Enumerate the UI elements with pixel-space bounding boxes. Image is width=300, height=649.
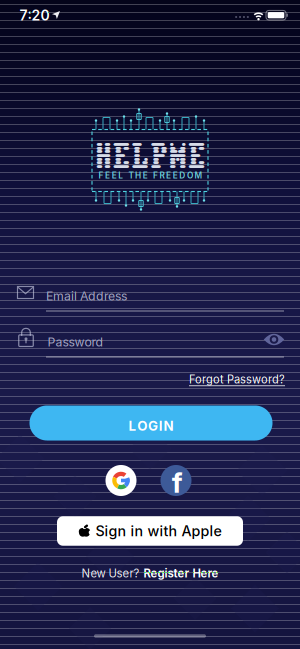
staticText: L xyxy=(129,418,137,434)
staticText: 7:20 xyxy=(19,7,49,24)
staticText: I xyxy=(159,418,163,434)
staticText: N xyxy=(163,418,173,434)
staticText: L xyxy=(118,170,123,180)
button[interactable]: Sign in with Apple xyxy=(57,516,243,546)
button[interactable]: Forgot Password? xyxy=(189,373,285,386)
staticText: E xyxy=(114,141,130,173)
button[interactable]: Show password xyxy=(263,332,284,346)
staticText: D xyxy=(179,170,185,180)
staticText: Forgot Password? xyxy=(189,373,285,386)
staticText: Email Address xyxy=(46,289,127,303)
staticText: L xyxy=(133,141,149,173)
staticText: F xyxy=(153,170,158,180)
staticText: E xyxy=(166,170,171,180)
staticText: O xyxy=(187,170,193,180)
staticText: T xyxy=(128,170,133,180)
staticText: O xyxy=(137,418,147,434)
staticText: F xyxy=(98,170,103,180)
button[interactable]: Sign in with Facebook xyxy=(160,465,191,496)
staticText: P xyxy=(152,141,168,173)
staticText: E xyxy=(112,170,117,180)
staticText: E xyxy=(105,170,110,180)
staticText: M xyxy=(171,141,187,173)
staticText: M xyxy=(194,170,202,180)
button[interactable]: New User? xyxy=(81,567,218,580)
staticText: G xyxy=(148,418,158,434)
staticText: H xyxy=(135,170,141,180)
button[interactable]: Sign in with Google xyxy=(105,465,136,496)
staticText: E xyxy=(189,141,205,173)
staticText: f xyxy=(172,466,183,499)
staticText: Register Here xyxy=(143,567,218,580)
staticText: R xyxy=(159,170,164,180)
staticText: E xyxy=(143,170,148,180)
staticText: Password xyxy=(47,335,103,349)
staticText: New User? xyxy=(81,567,139,580)
staticText: Sign in with Apple xyxy=(95,522,221,540)
staticText: E xyxy=(173,170,178,180)
button[interactable]: L xyxy=(29,405,272,440)
staticText: H xyxy=(95,141,111,173)
